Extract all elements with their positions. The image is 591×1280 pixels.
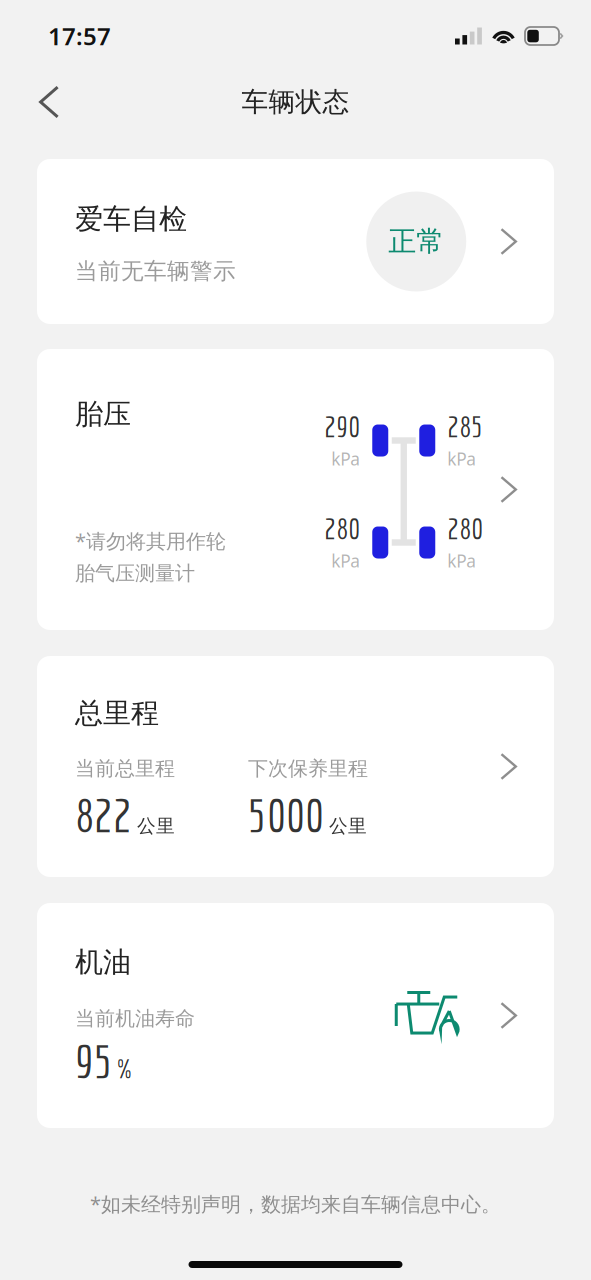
staticText: 290: [324, 409, 360, 443]
staticText: *如未经特别声明，数据均来自车辆信息中心。: [90, 1190, 501, 1217]
staticText: 280: [447, 511, 483, 545]
button[interactable]: 总里程: [37, 656, 554, 877]
staticText: 285: [447, 409, 483, 443]
staticText: 机油: [75, 945, 131, 979]
staticText: kPa: [331, 549, 360, 572]
staticText: 车辆状态: [241, 86, 349, 118]
staticText: 当前总里程: [75, 756, 175, 781]
staticText: 总里程: [75, 696, 159, 730]
button[interactable]: 机油: [37, 903, 554, 1128]
staticText: 17:57: [48, 20, 111, 52]
staticText: 当前无车辆警示: [75, 257, 236, 285]
staticText: 胎气压测量计: [75, 561, 195, 586]
staticText: kPa: [331, 447, 360, 470]
staticText: 280: [324, 511, 360, 545]
staticText: 5000: [248, 788, 324, 842]
staticText: 当前机油寿命: [75, 1006, 195, 1031]
button[interactable]: 爱车自检: [37, 159, 554, 324]
staticText: 公里: [137, 815, 175, 837]
staticText: 正常: [388, 224, 444, 259]
staticText: 822: [75, 788, 132, 842]
staticText: 公里: [329, 815, 367, 837]
staticText: 爱车自检: [75, 202, 187, 236]
staticText: %: [117, 1054, 132, 1083]
button[interactable]: 胎压: [37, 349, 554, 630]
staticText: 胎压: [75, 397, 131, 431]
staticText: kPa: [447, 549, 476, 572]
staticText: 95: [75, 1034, 113, 1088]
staticText: kPa: [447, 447, 476, 470]
staticText: *请勿将其用作轮: [75, 527, 226, 554]
staticText: 下次保养里程: [248, 756, 368, 781]
button[interactable]: 返回: [0, 74, 77, 129]
